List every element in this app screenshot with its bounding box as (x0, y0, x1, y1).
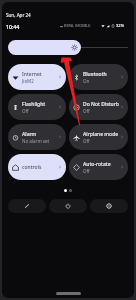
button[interactable]: Settings (90, 199, 128, 213)
button[interactable]: Auto-rotate (69, 154, 128, 180)
button[interactable]: Power (49, 199, 87, 213)
staticText: Auto-rotate (83, 161, 111, 168)
staticText: Internet (22, 71, 42, 78)
staticText: controls (22, 164, 42, 171)
staticText: Bluetooth (83, 71, 107, 78)
staticText: Off (83, 138, 90, 144)
staticText: No alarm set (22, 138, 50, 144)
staticText: Airplane mode (83, 131, 119, 138)
staticText: Flashlight (22, 101, 46, 108)
staticText: Do Not Disturb (83, 101, 119, 108)
button[interactable]: Alarm (8, 124, 66, 150)
staticText: Off (83, 108, 90, 114)
staticText: On (83, 78, 90, 84)
button[interactable]: controls (8, 154, 66, 180)
staticText: Sun, Apr 24 (6, 12, 31, 18)
staticText: Off (83, 168, 90, 174)
button[interactable]: Do Not Disturb (69, 94, 128, 120)
staticText: Alarm (22, 131, 37, 138)
button[interactable] (8, 40, 128, 55)
staticText: Off (22, 108, 29, 114)
staticText: 10:44 (6, 23, 20, 30)
staticText: BSNL MOBILE (64, 23, 91, 29)
button[interactable]: Edit (8, 199, 46, 213)
button[interactable]: Airplane mode (69, 124, 128, 150)
staticText: JioM2 (22, 78, 34, 84)
staticText: 32% (116, 23, 125, 29)
button[interactable]: Bluetooth (69, 64, 128, 90)
button[interactable]: Flashlight (8, 94, 66, 120)
button[interactable]: Internet (8, 64, 66, 90)
